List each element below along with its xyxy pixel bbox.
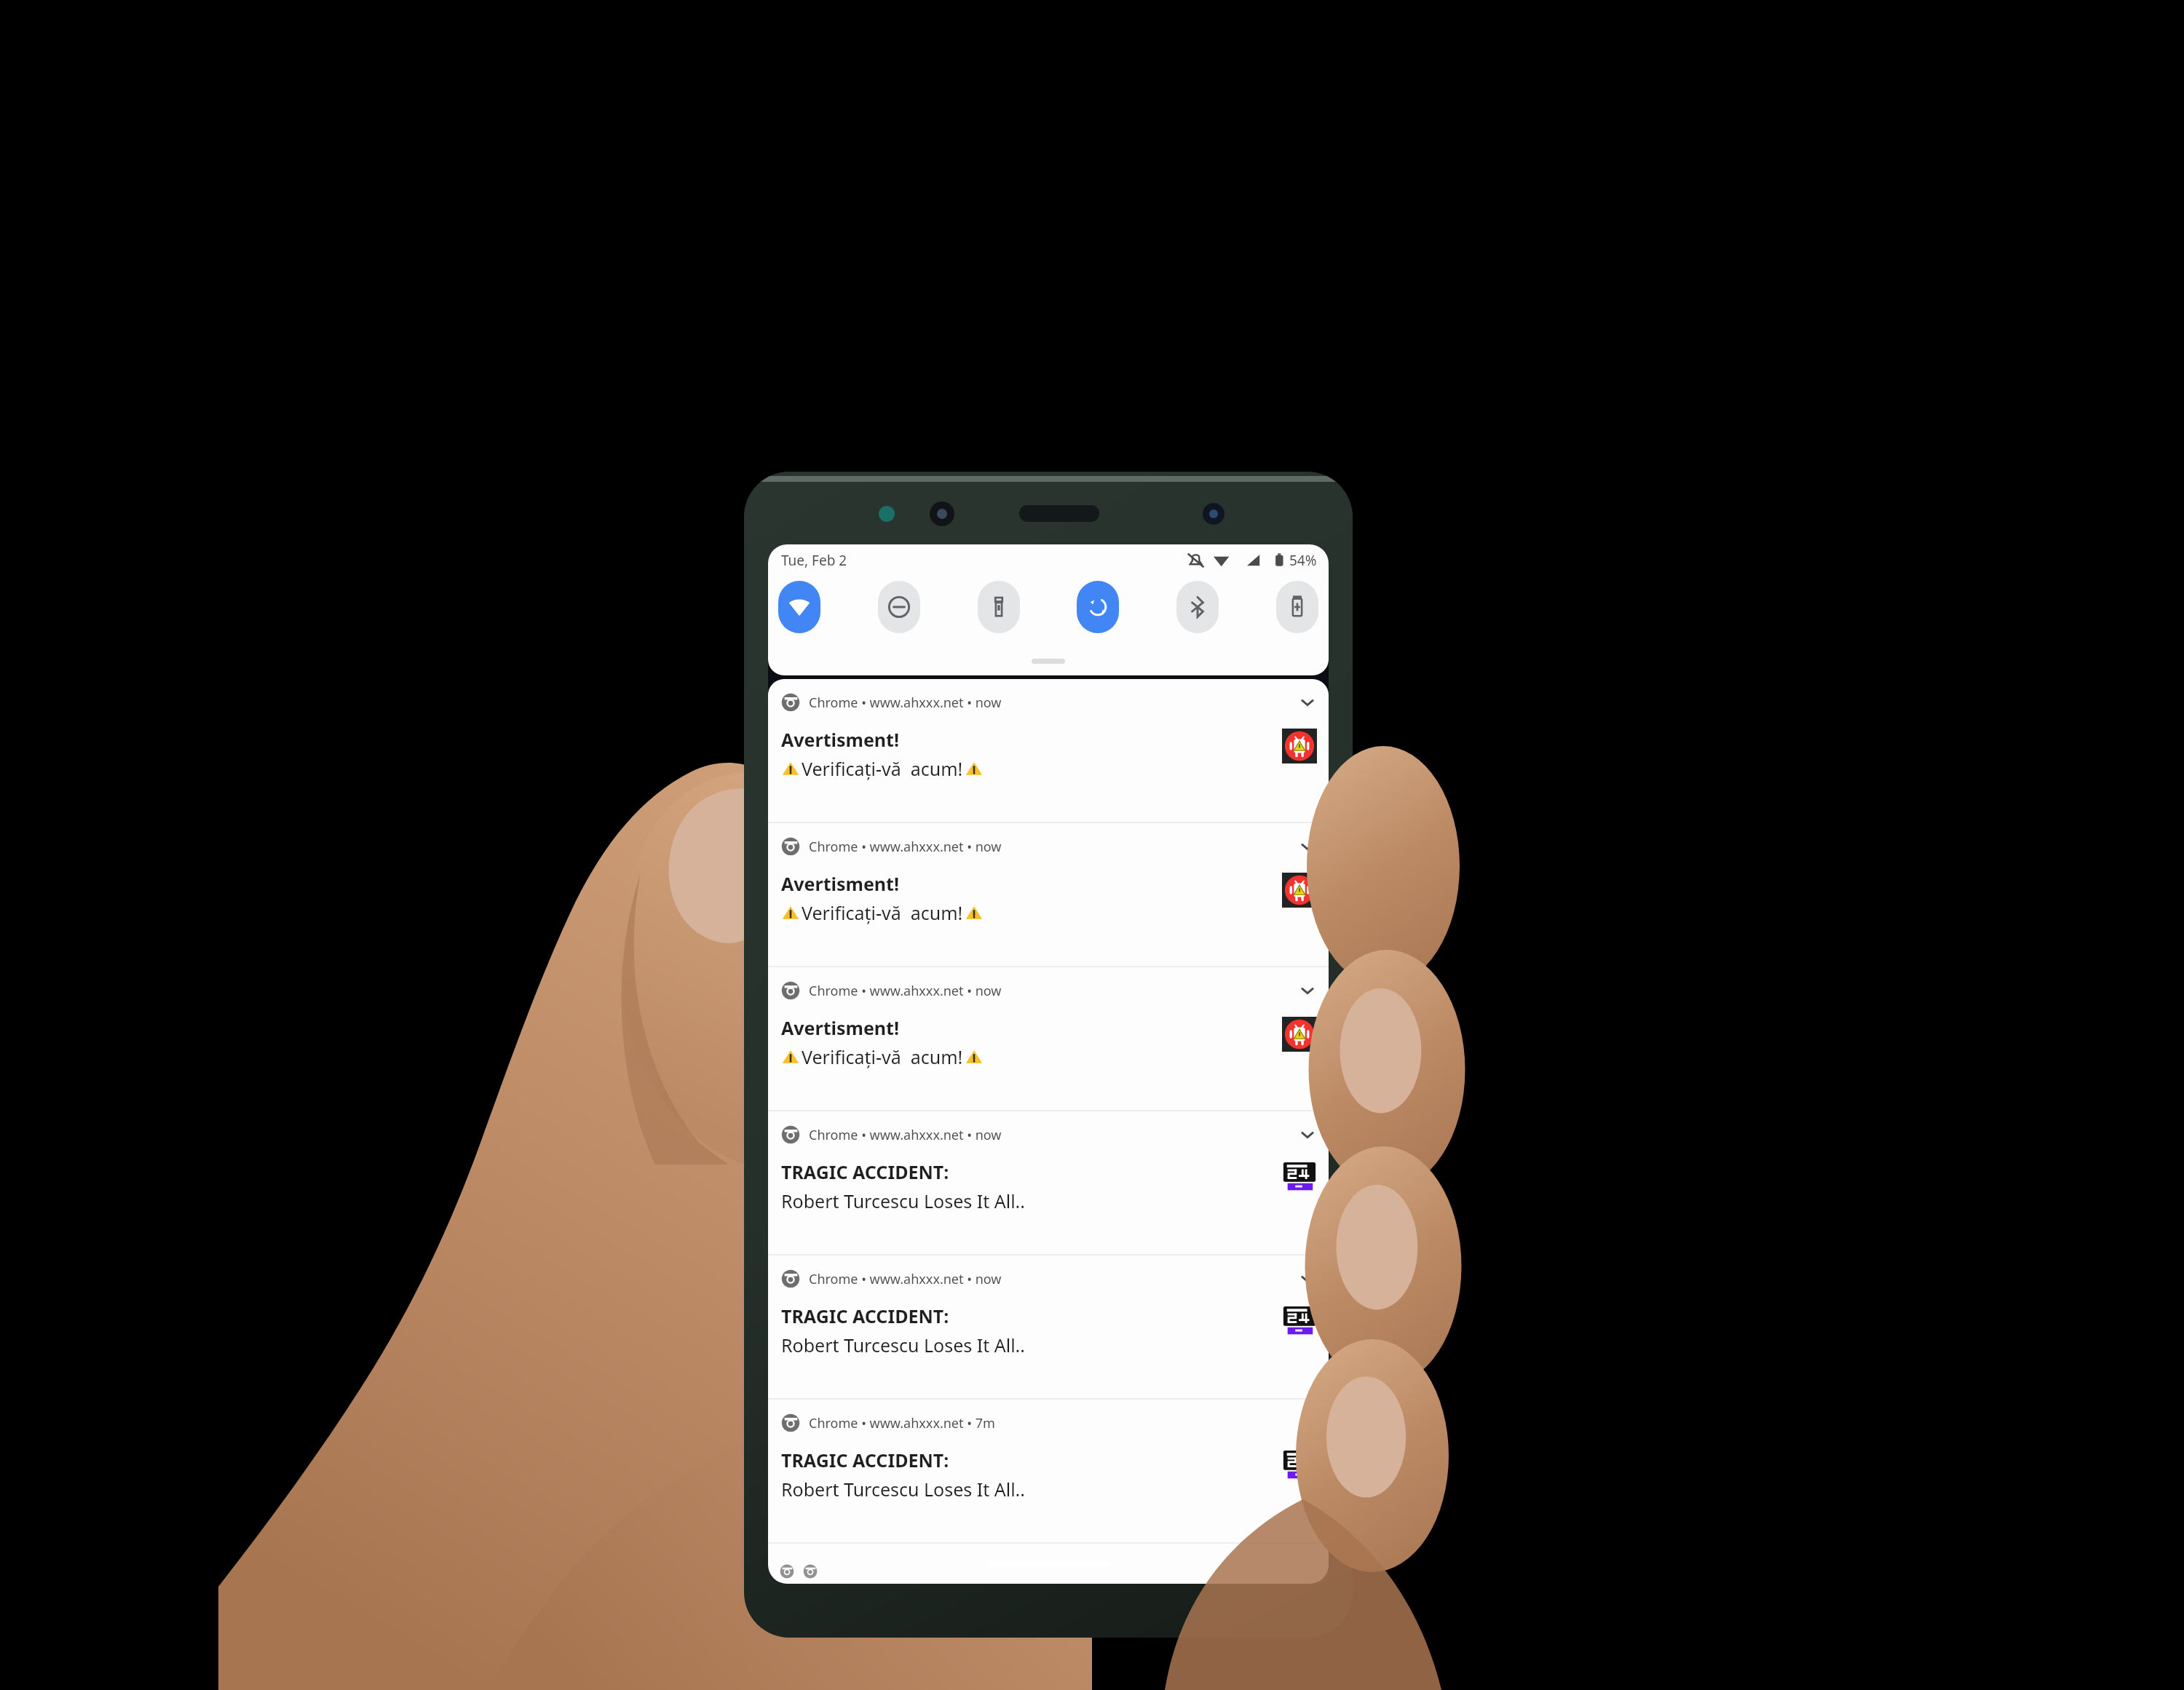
button[interactable]: Chrome • www.ahxxx.net • 7m bbox=[768, 1400, 1329, 1542]
staticText: Chrome • www.ahxxx.net • now bbox=[809, 1270, 1002, 1288]
button[interactable]: Auto-rotate bbox=[1077, 581, 1119, 633]
button[interactable]: Expand bbox=[1298, 981, 1317, 1000]
button[interactable]: Expand bbox=[1298, 1269, 1317, 1288]
staticText: Avertisment! bbox=[781, 871, 900, 896]
staticText: Robert Turcescu Loses It All.. bbox=[781, 1333, 1026, 1357]
staticText: TRAGIC ACCIDENT: bbox=[781, 1448, 949, 1472]
staticText: Avertisment! bbox=[781, 1015, 900, 1040]
staticText: Avertisment! bbox=[781, 727, 900, 752]
button[interactable]: Chrome • www.ahxxx.net • now bbox=[768, 679, 1329, 822]
staticText: Verificați-vă acum! bbox=[802, 900, 963, 925]
button[interactable]: Expand bbox=[1298, 1125, 1317, 1144]
staticText: Verificați-vă acum! bbox=[802, 1044, 963, 1069]
button[interactable]: Battery saver bbox=[1276, 581, 1318, 633]
staticText: Robert Turcescu Loses It All.. bbox=[781, 1189, 1026, 1213]
button[interactable]: Bluetooth bbox=[1176, 581, 1219, 633]
button[interactable]: Chrome • www.ahxxx.net • now bbox=[768, 823, 1329, 966]
button[interactable]: Expand bbox=[1298, 837, 1317, 856]
staticText: Chrome • www.ahxxx.net • now bbox=[809, 1126, 1002, 1144]
staticText: Robert Turcescu Loses It All.. bbox=[781, 1477, 1026, 1501]
staticText: Verificați-vă acum! bbox=[802, 756, 963, 781]
staticText: 54% bbox=[1289, 551, 1317, 570]
staticText: TRAGIC ACCIDENT: bbox=[781, 1304, 949, 1328]
staticText: Chrome • www.ahxxx.net • now bbox=[809, 694, 1002, 712]
staticText: Tue, Feb 2 bbox=[781, 551, 847, 570]
staticText: TRAGIC ACCIDENT: bbox=[781, 1159, 949, 1184]
button[interactable]: Do not disturb bbox=[878, 581, 920, 633]
staticText: Chrome • www.ahxxx.net • now bbox=[809, 838, 1002, 856]
button[interactable]: Wi-Fi bbox=[778, 581, 820, 633]
button[interactable]: Expand bbox=[1298, 1413, 1317, 1432]
staticText: Chrome • www.ahxxx.net • now bbox=[809, 982, 1002, 1000]
button[interactable]: Expand bbox=[1298, 693, 1317, 712]
staticText: Chrome • www.ahxxx.net • 7m bbox=[809, 1414, 995, 1432]
button[interactable]: Chrome • www.ahxxx.net • now bbox=[768, 1111, 1329, 1254]
button[interactable]: Chrome • www.ahxxx.net • now bbox=[768, 967, 1329, 1110]
button[interactable]: Chrome • www.ahxxx.net • now bbox=[768, 1255, 1329, 1398]
button[interactable]: Flashlight bbox=[978, 581, 1020, 633]
